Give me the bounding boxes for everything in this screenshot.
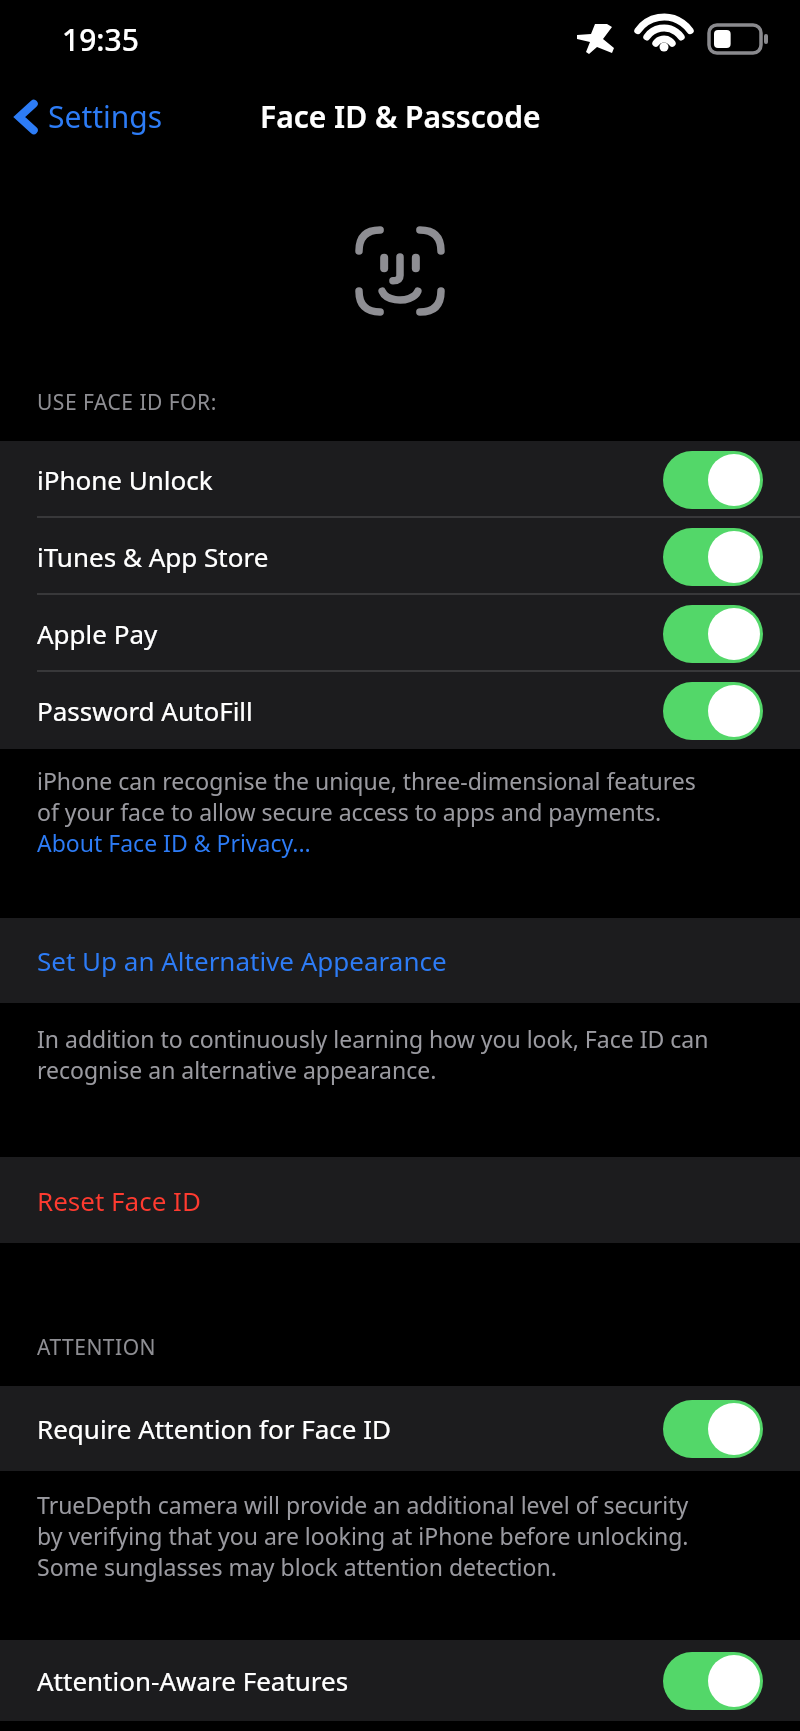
staticText: Password AutoFill bbox=[37, 693, 253, 728]
button[interactable]: Toggle, on bbox=[663, 528, 763, 586]
button[interactable]: Apple Pay bbox=[0, 595, 800, 672]
button[interactable]: Toggle, on bbox=[663, 1400, 763, 1458]
staticText: ATTENTION bbox=[37, 1333, 157, 1362]
staticText: About Face ID & Privacy... bbox=[37, 827, 311, 858]
staticText: Reset Face ID bbox=[37, 1183, 201, 1218]
staticText: In addition to continuously learning how… bbox=[37, 1023, 709, 1054]
button[interactable]: Toggle, on bbox=[663, 682, 763, 740]
button[interactable]: Toggle, on bbox=[663, 451, 763, 509]
button[interactable]: Attention-Aware Features bbox=[0, 1640, 800, 1721]
button[interactable]: Set Up an Alternative Appearance bbox=[0, 918, 800, 1003]
button[interactable]: Toggle, on bbox=[663, 1652, 763, 1710]
button[interactable]: Require Attention for Face ID bbox=[0, 1386, 800, 1471]
staticText: Set Up an Alternative Appearance bbox=[37, 943, 447, 978]
staticText: of your face to allow secure access to a… bbox=[37, 796, 662, 827]
staticText: Require Attention for Face ID bbox=[37, 1411, 391, 1446]
button[interactable]: Settings bbox=[0, 96, 177, 137]
staticText: iPhone Unlock bbox=[37, 462, 213, 497]
staticText: Some sunglasses may block attention dete… bbox=[37, 1551, 557, 1582]
staticText: TrueDepth camera will provide an additio… bbox=[37, 1489, 689, 1520]
staticText: Face ID & Passcode bbox=[260, 96, 541, 137]
staticText: iTunes & App Store bbox=[37, 539, 269, 574]
staticText: by verifying that you are looking at iPh… bbox=[37, 1520, 689, 1551]
staticText: Apple Pay bbox=[37, 616, 158, 651]
staticText: Settings bbox=[48, 96, 163, 137]
staticText: iPhone can recognise the unique, three-d… bbox=[37, 765, 696, 796]
staticText: 19:35 bbox=[62, 19, 139, 60]
staticText: recognise an alternative appearance. bbox=[37, 1054, 437, 1085]
button[interactable]: Toggle, on bbox=[663, 605, 763, 663]
button[interactable]: Password AutoFill bbox=[0, 672, 800, 749]
button[interactable]: iTunes & App Store bbox=[0, 518, 800, 595]
button[interactable]: iPhone Unlock bbox=[0, 441, 800, 518]
staticText: USE FACE ID FOR: bbox=[37, 388, 217, 417]
staticText: Attention-Aware Features bbox=[37, 1663, 349, 1698]
button[interactable]: Reset Face ID bbox=[0, 1157, 800, 1243]
